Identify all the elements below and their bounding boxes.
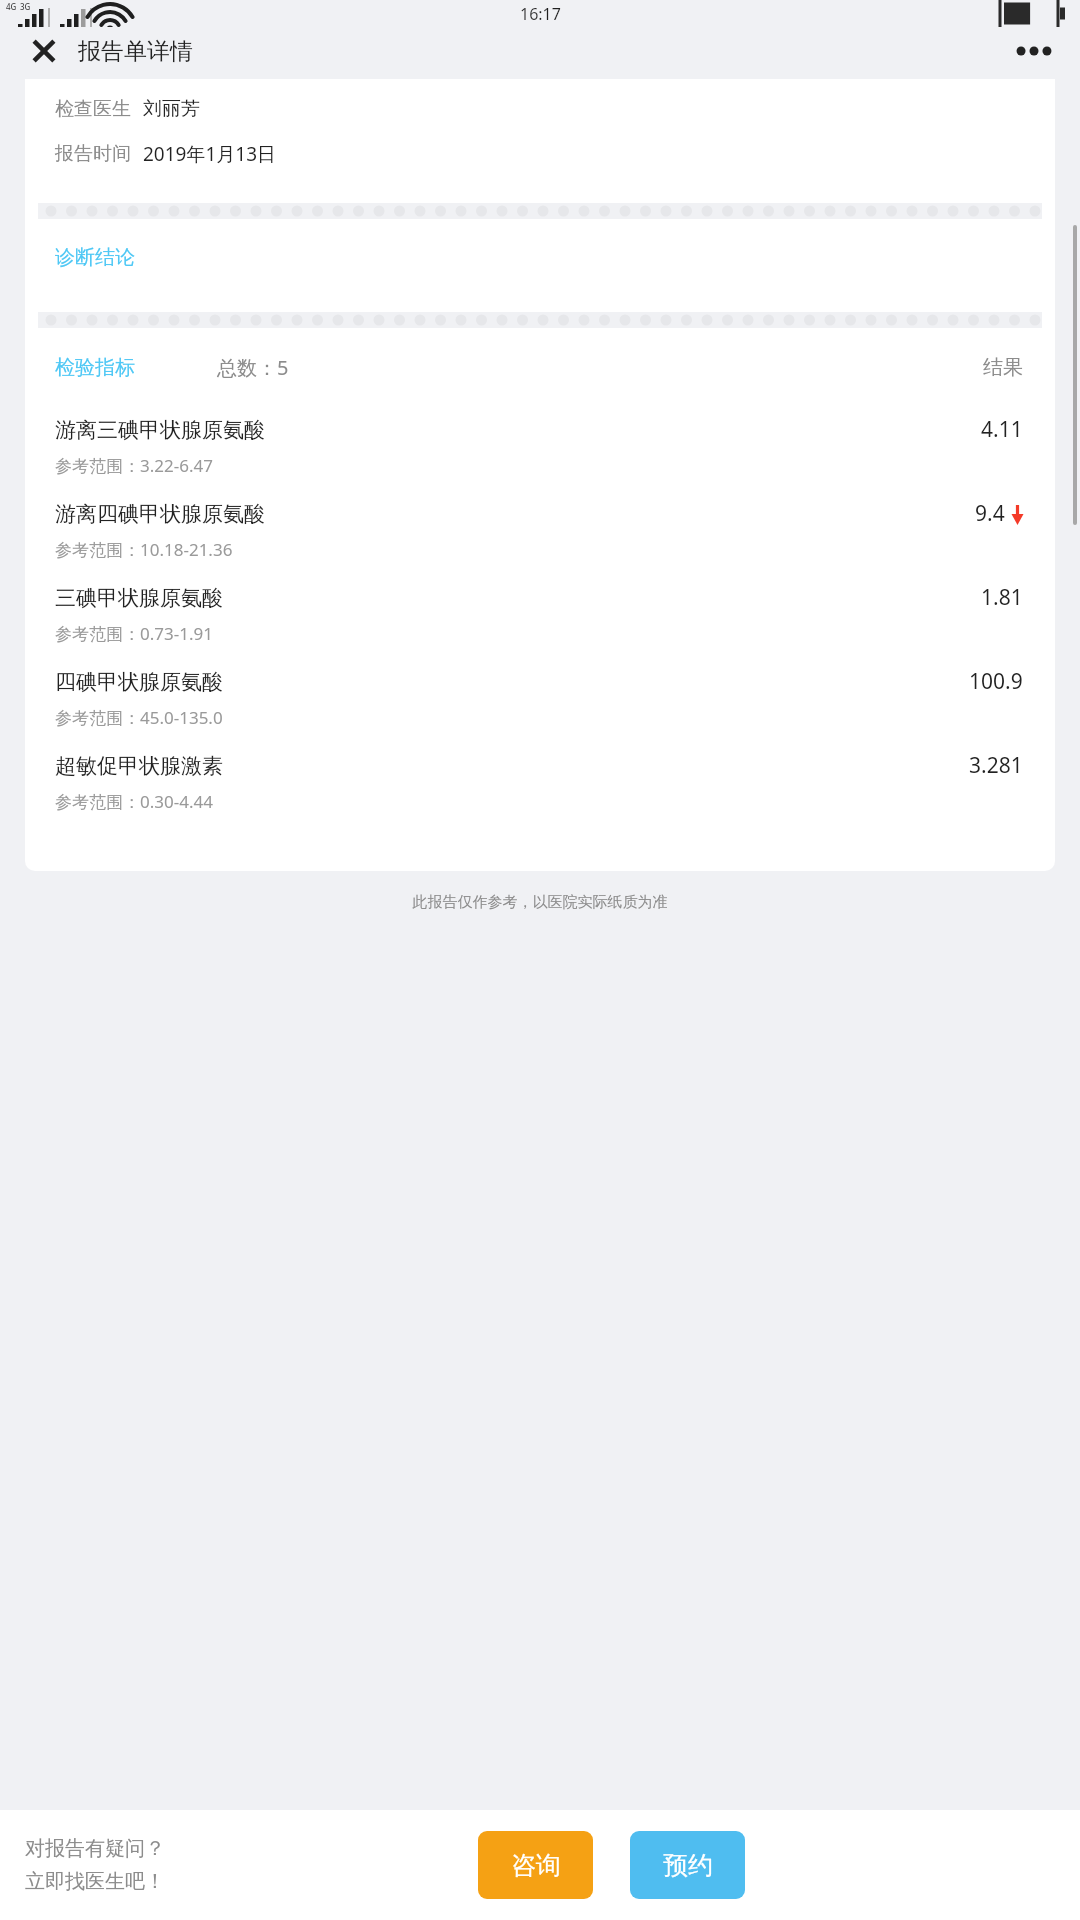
staticText: 报告时间 <box>55 142 131 166</box>
staticText: 3.281 <box>969 751 1023 780</box>
staticText: 参考范围：3.22-6.47 <box>55 454 213 477</box>
staticText: 检验指标 <box>55 355 135 380</box>
staticText: 结果 <box>983 355 1023 380</box>
staticText: 总数：5 <box>217 354 289 381</box>
staticText: 参考范围：45.0-135.0 <box>55 706 223 729</box>
button[interactable]: 预约 <box>630 1831 745 1899</box>
staticText: 立即找医生吧！ <box>25 1869 165 1894</box>
button[interactable]: Close <box>22 29 66 73</box>
staticText: 参考范围：0.30-4.44 <box>55 790 213 813</box>
staticText: 2019年1月13日 <box>143 141 277 167</box>
staticText: 此报告仅作参考，以医院实际纸质为准 <box>0 893 1080 912</box>
button[interactable]: 游离四碘甲状腺原氨酸 <box>25 499 1055 583</box>
button[interactable]: 超敏促甲状腺激素 <box>25 751 1055 835</box>
button[interactable]: 咨询 <box>478 1831 593 1899</box>
staticText: 诊断结论 <box>55 245 135 270</box>
staticText: 对报告有疑问？ <box>25 1836 165 1861</box>
staticText: 16:17 <box>520 3 561 25</box>
staticText: 超敏促甲状腺激素 <box>55 753 223 779</box>
staticText: 刘丽芳 <box>143 97 200 121</box>
staticText: 9.4 <box>975 499 1005 528</box>
staticText: 参考范围：10.18-21.36 <box>55 538 233 561</box>
staticText: 三碘甲状腺原氨酸 <box>55 585 223 611</box>
button[interactable]: More options <box>1010 27 1058 75</box>
staticText: 报告单详情 <box>78 37 193 66</box>
staticText: 游离四碘甲状腺原氨酸 <box>55 501 265 527</box>
button[interactable]: 游离三碘甲状腺原氨酸 <box>25 415 1055 499</box>
staticText: 参考范围：0.73-1.91 <box>55 622 213 645</box>
staticText: 100.9 <box>969 667 1023 696</box>
staticText: 检查医生 <box>55 97 131 121</box>
button[interactable]: 三碘甲状腺原氨酸 <box>25 583 1055 667</box>
button[interactable]: 四碘甲状腺原氨酸 <box>25 667 1055 751</box>
staticText: 4.11 <box>981 415 1023 444</box>
staticText: 预约 <box>663 1850 713 1881</box>
staticText: 1.81 <box>981 583 1023 612</box>
staticText: 3G <box>20 1 31 12</box>
staticText: 咨询 <box>511 1850 561 1881</box>
staticText: 四碘甲状腺原氨酸 <box>55 669 223 695</box>
staticText: 游离三碘甲状腺原氨酸 <box>55 417 265 443</box>
staticText: 4G <box>6 1 17 12</box>
